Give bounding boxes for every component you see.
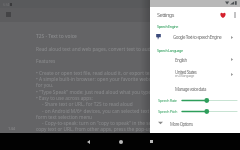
staticText: - on Android M/6+ devices, you can selec… [42,108,150,114]
staticText: Features [36,58,56,64]
staticText: • "Type Speak" mode: just read aloud wha… [36,89,151,95]
staticText: en-US language [175,74,194,78]
staticText: Speech Engine [157,24,179,29]
button[interactable]: Back [78,133,99,150]
staticText: Read aloud text and web pages, convert t… [36,46,155,52]
button[interactable]: Open navigation menu [3,9,14,20]
staticText: - Copy-to-speak: turn on "copy to speak"… [42,120,166,126]
staticText: More Options [170,121,193,127]
staticText: - Share text or URL, for T2S to read alo… [42,101,133,107]
staticText: form text selection menu [36,114,93,120]
staticText: • A simple built-in browser: open your f… [36,76,157,82]
staticText: Manage voice data [175,86,206,92]
staticText: • Easy to use across apps: [36,95,93,101]
button[interactable] [150,66,240,80]
staticText: copy text or URL, from other apps, press… [36,126,163,132]
staticText: United States [175,69,197,75]
staticText: T2S - Text to voice [36,33,77,40]
staticText: Speech Pitch [158,109,178,114]
staticText: Settings [157,11,174,19]
button[interactable] [150,117,240,129]
button[interactable] [150,54,240,65]
staticText: Google Text-to-speech Engine [173,34,222,40]
staticText: 144 [8,126,16,132]
button[interactable] [150,83,240,94]
button[interactable] [150,96,240,105]
staticText: • Create or open text file, read aloud i… [36,70,154,76]
staticText: Speech Rate [158,98,177,103]
button[interactable]: Settings [150,8,240,22]
staticText: 6:34 [3,2,9,7]
staticText: for you. [36,82,54,88]
button[interactable] [150,31,240,42]
button[interactable]: Favourite [216,8,229,22]
staticText: Speech Language [157,48,183,53]
button[interactable] [150,107,240,116]
staticText: English [175,57,187,63]
button[interactable]: Home [110,133,131,150]
button[interactable]: More options [229,8,240,22]
button[interactable]: Recent apps [141,133,162,150]
